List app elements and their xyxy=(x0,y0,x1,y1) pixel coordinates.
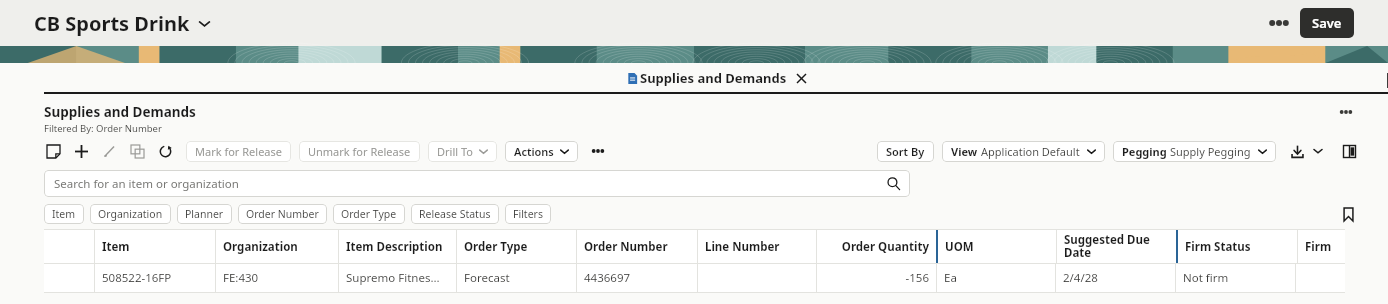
staticText: 4436697 xyxy=(584,270,631,286)
staticText: -156 xyxy=(905,270,929,286)
staticText: 508522-16FP xyxy=(102,270,172,286)
staticText: Actions xyxy=(514,144,554,159)
staticText: Unmark for Release xyxy=(308,144,411,159)
staticText: 2/4/28 xyxy=(1063,270,1098,286)
button[interactable]: Pegging xyxy=(1113,141,1276,162)
button[interactable]: Add xyxy=(72,141,90,161)
staticText: Mark for Release xyxy=(195,144,282,159)
staticText: Forecast xyxy=(464,270,510,286)
button[interactable]: Panel options xyxy=(1334,103,1358,121)
button[interactable]: Sort By xyxy=(877,141,934,162)
button[interactable]: Supplies and Demands xyxy=(44,63,1388,96)
button[interactable]: Firm xyxy=(1298,230,1345,263)
button[interactable]: Item xyxy=(95,230,215,263)
button[interactable]: Bookmark xyxy=(1338,204,1358,224)
staticText: Save xyxy=(1312,14,1342,32)
button[interactable]: Create note xyxy=(44,141,62,161)
staticText: Search for an item or organization xyxy=(54,176,239,192)
button[interactable]: Download xyxy=(1288,142,1306,160)
staticText: Order Number xyxy=(584,239,668,255)
button[interactable]: More options xyxy=(1264,10,1294,36)
button[interactable]: Actions xyxy=(505,141,578,162)
button[interactable]: Order Number xyxy=(238,204,327,224)
staticText: Organization xyxy=(98,207,163,221)
button[interactable]: Firm Status xyxy=(1178,230,1297,263)
staticText: Pegging xyxy=(1122,144,1170,159)
button[interactable]: Save xyxy=(1300,8,1354,38)
staticText: Suggested Due Date xyxy=(1064,232,1150,261)
button[interactable]: Line Number xyxy=(698,230,816,263)
staticText: Organization xyxy=(223,239,298,255)
staticText: Planner xyxy=(185,207,224,221)
staticText: Release Status xyxy=(419,207,491,221)
staticText: Application Default xyxy=(981,144,1080,159)
staticText: Item xyxy=(52,207,76,221)
button[interactable]: Download options xyxy=(1310,142,1326,160)
button[interactable]: Suggested Due Date xyxy=(1057,230,1176,263)
staticText: Filtered By: Order Number xyxy=(44,122,162,135)
button[interactable]: More actions xyxy=(588,142,608,160)
staticText: Sort By xyxy=(886,144,925,159)
button[interactable]: Item xyxy=(44,204,84,224)
button[interactable]: Order Number xyxy=(577,230,697,263)
staticText: CB Sports Drink xyxy=(34,10,190,37)
staticText: UOM xyxy=(945,239,974,255)
button[interactable]: Duplicate xyxy=(128,141,146,161)
staticText: Item xyxy=(102,239,130,255)
button[interactable]: UOM xyxy=(938,230,1056,263)
button[interactable]: Release Status xyxy=(411,204,499,224)
button[interactable]: Order Type xyxy=(457,230,576,263)
button[interactable]: CB Sports Drink xyxy=(34,10,211,37)
staticText: Order Type xyxy=(464,239,528,255)
button[interactable]: Split view xyxy=(1340,142,1358,160)
staticText: Firm Status xyxy=(1185,239,1251,255)
staticText: Supplies and Demands xyxy=(640,69,787,87)
button[interactable]: Order Type xyxy=(333,204,405,224)
button[interactable]: Organization xyxy=(90,204,171,224)
button[interactable]: Mark for Release xyxy=(186,141,291,162)
staticText: Supply Pegging xyxy=(1170,144,1251,159)
button[interactable]: Refresh xyxy=(156,141,174,161)
button[interactable]: 508522-16FP xyxy=(44,264,1345,292)
button[interactable]: Item Description xyxy=(339,230,456,263)
staticText: Order Quantity xyxy=(841,239,929,255)
button[interactable]: View xyxy=(942,141,1105,162)
button[interactable]: Filters xyxy=(505,204,551,224)
button[interactable]: Drill To xyxy=(428,141,497,162)
button[interactable]: Search for an item or organization xyxy=(44,170,910,197)
staticText: Order Type xyxy=(341,207,397,221)
staticText: Item Description xyxy=(346,239,443,255)
staticText: View xyxy=(951,144,981,159)
staticText: FE:430 xyxy=(223,270,259,286)
button[interactable]: Unmark for Release xyxy=(299,141,420,162)
staticText: Order Number xyxy=(246,207,319,221)
staticText: Filters xyxy=(513,207,543,221)
staticText: Ea xyxy=(944,270,957,286)
staticText: Supplies and Demands xyxy=(44,103,196,121)
staticText: Supremo Fitnes… xyxy=(346,270,440,286)
button[interactable]: Organization xyxy=(216,230,338,263)
staticText: Line Number xyxy=(705,239,780,255)
button[interactable]: Edit xyxy=(100,141,118,161)
staticText: Firm xyxy=(1305,239,1335,255)
button[interactable]: Order Quantity xyxy=(817,230,936,263)
staticText: Drill To xyxy=(437,144,473,159)
button[interactable]: Planner xyxy=(177,204,232,224)
staticText: Not firm xyxy=(1183,270,1229,286)
